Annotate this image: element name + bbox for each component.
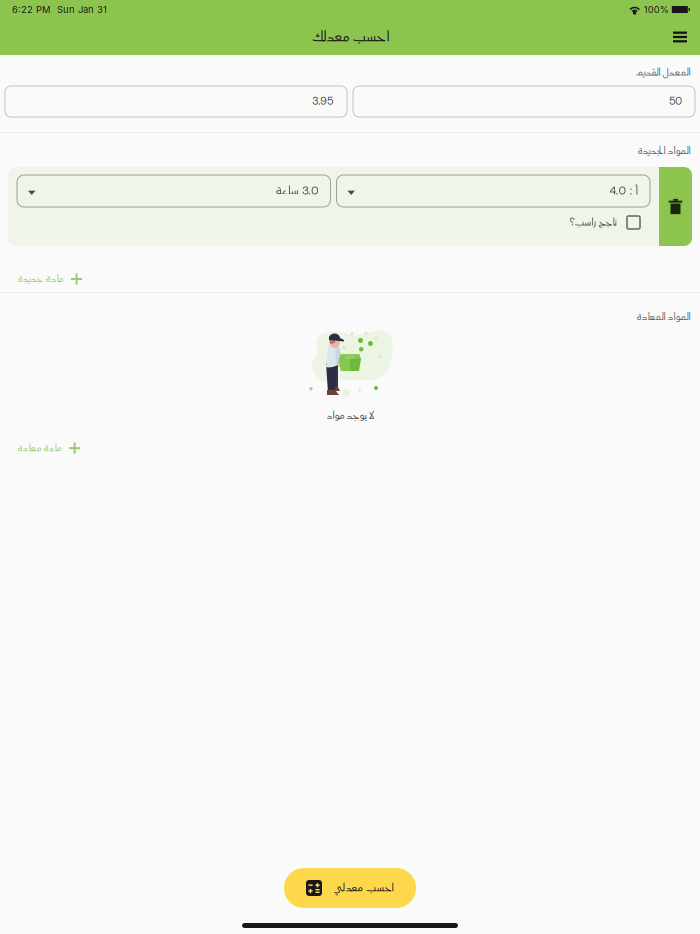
staticText: ناجح راسب؟ — [569, 215, 616, 230]
button[interactable]: 3.95 — [5, 86, 347, 117]
staticText: احسب معدلي — [333, 880, 394, 896]
button[interactable]: ناجح راسب؟ — [569, 207, 640, 238]
button[interactable]: مادة جديدة — [0, 268, 94, 290]
button[interactable]: 3.0 ساعة — [17, 175, 330, 207]
staticText: 6:22 PM — [12, 4, 50, 15]
button[interactable]: 50 — [353, 86, 695, 117]
staticText: مادة معادة — [17, 441, 61, 456]
staticText: المواد الجديدة — [637, 143, 690, 158]
staticText: أ : 4.0 — [609, 182, 638, 199]
staticText: المواد المعادة — [636, 309, 690, 324]
staticText: مادة جديدة — [17, 271, 63, 286]
staticText: Sun Jan 31 — [57, 4, 107, 15]
staticText: 100% — [644, 4, 669, 15]
staticText: المعدل القديم — [635, 65, 690, 80]
button[interactable]: مادة معادة — [0, 437, 92, 459]
staticText: 3.0 ساعة — [275, 182, 318, 199]
staticText: 50 — [669, 93, 682, 110]
staticText: احسب معدلك — [311, 27, 389, 47]
button[interactable]: احسب معدلي — [284, 868, 416, 908]
button[interactable]: Delete subject — [659, 167, 692, 246]
staticText: لا يوجد مواد — [326, 408, 374, 423]
staticText: 3.95 — [312, 93, 334, 110]
button[interactable]: أ : 4.0 — [336, 175, 650, 207]
button[interactable]: Menu — [660, 19, 700, 55]
